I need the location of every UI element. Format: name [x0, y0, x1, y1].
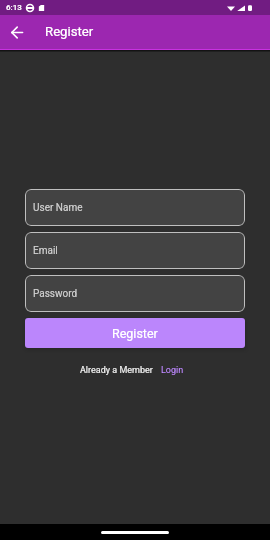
- staticText: Password: [33, 288, 78, 300]
- staticText: User Name: [33, 202, 83, 214]
- staticText: Register: [112, 326, 158, 341]
- button[interactable]: Login: [161, 365, 184, 376]
- button[interactable]: Back: [0, 15, 35, 50]
- staticText: 6:13: [6, 3, 22, 12]
- staticText: Already a Member: [80, 365, 153, 376]
- button[interactable]: User Name: [25, 189, 245, 226]
- staticText: Email: [33, 245, 58, 257]
- staticText: Login: [161, 365, 184, 376]
- staticText: Register: [45, 24, 94, 39]
- button[interactable]: Register: [25, 318, 245, 348]
- button[interactable]: Email: [25, 232, 245, 269]
- button[interactable]: Password: [25, 275, 245, 312]
